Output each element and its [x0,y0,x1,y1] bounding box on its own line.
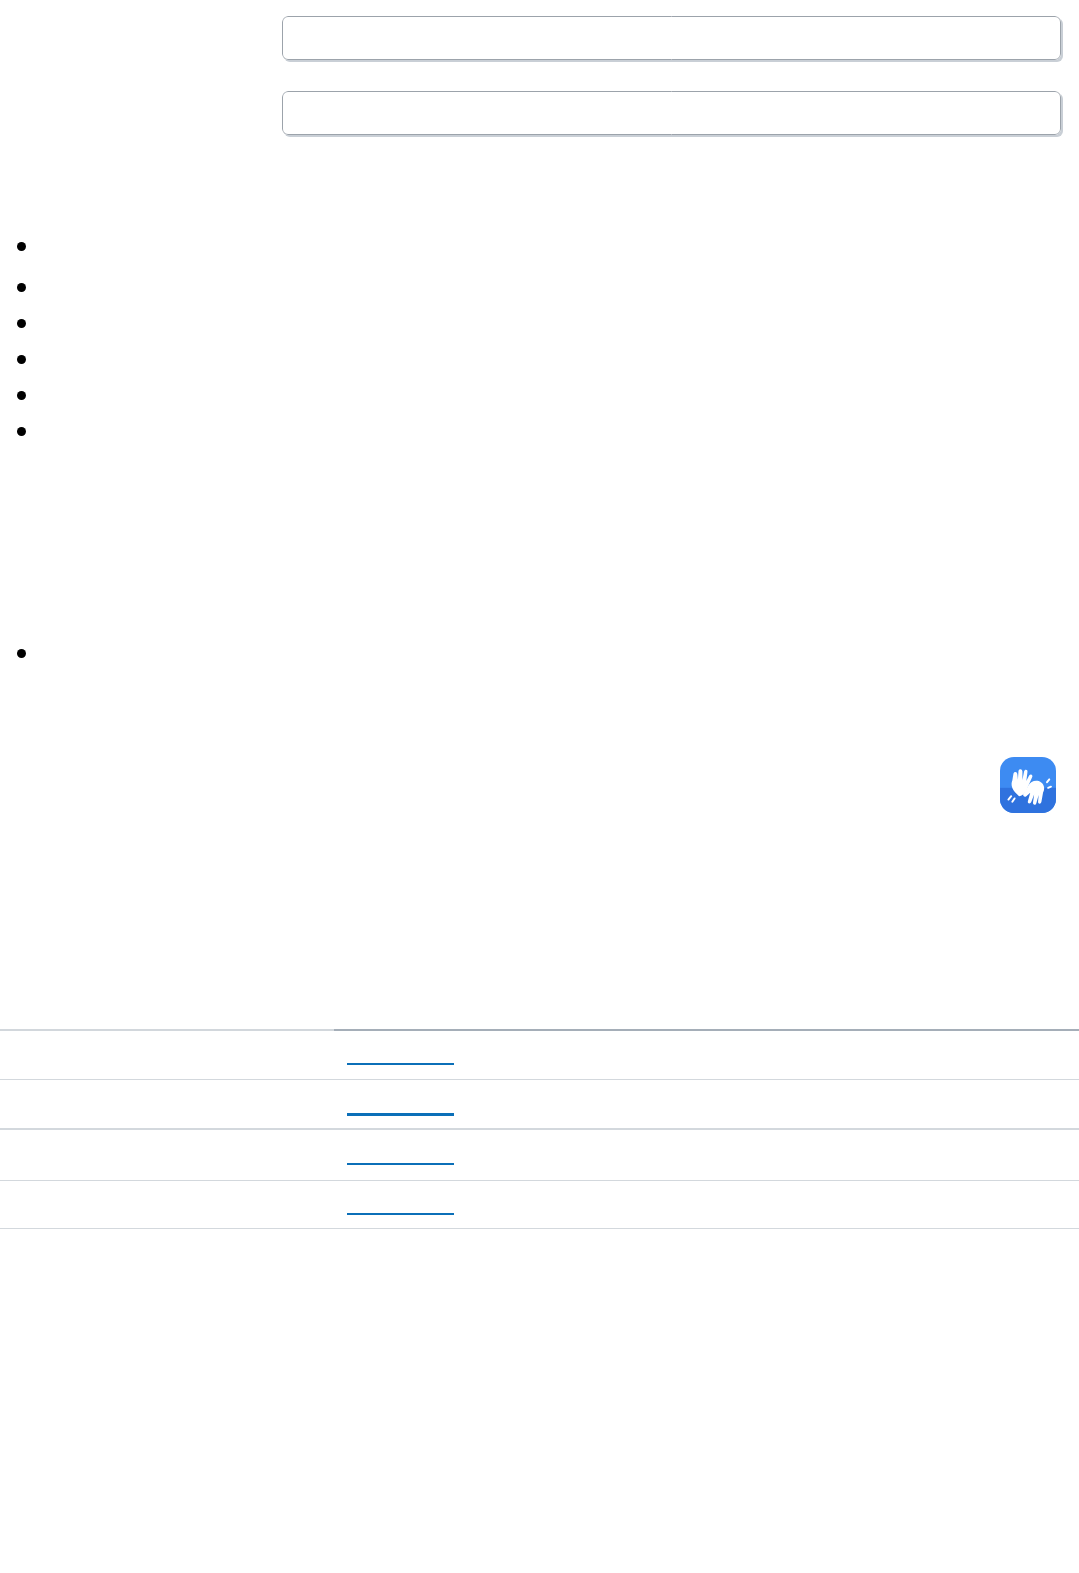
button[interactable] [282,16,1061,60]
button[interactable]: Link [347,1137,454,1167]
button[interactable]: Link [347,1087,454,1117]
button[interactable] [282,91,1061,135]
button[interactable]: Sign language accessibility [1000,757,1056,813]
button[interactable]: Link [347,1187,454,1217]
button[interactable]: Link [347,1037,454,1067]
